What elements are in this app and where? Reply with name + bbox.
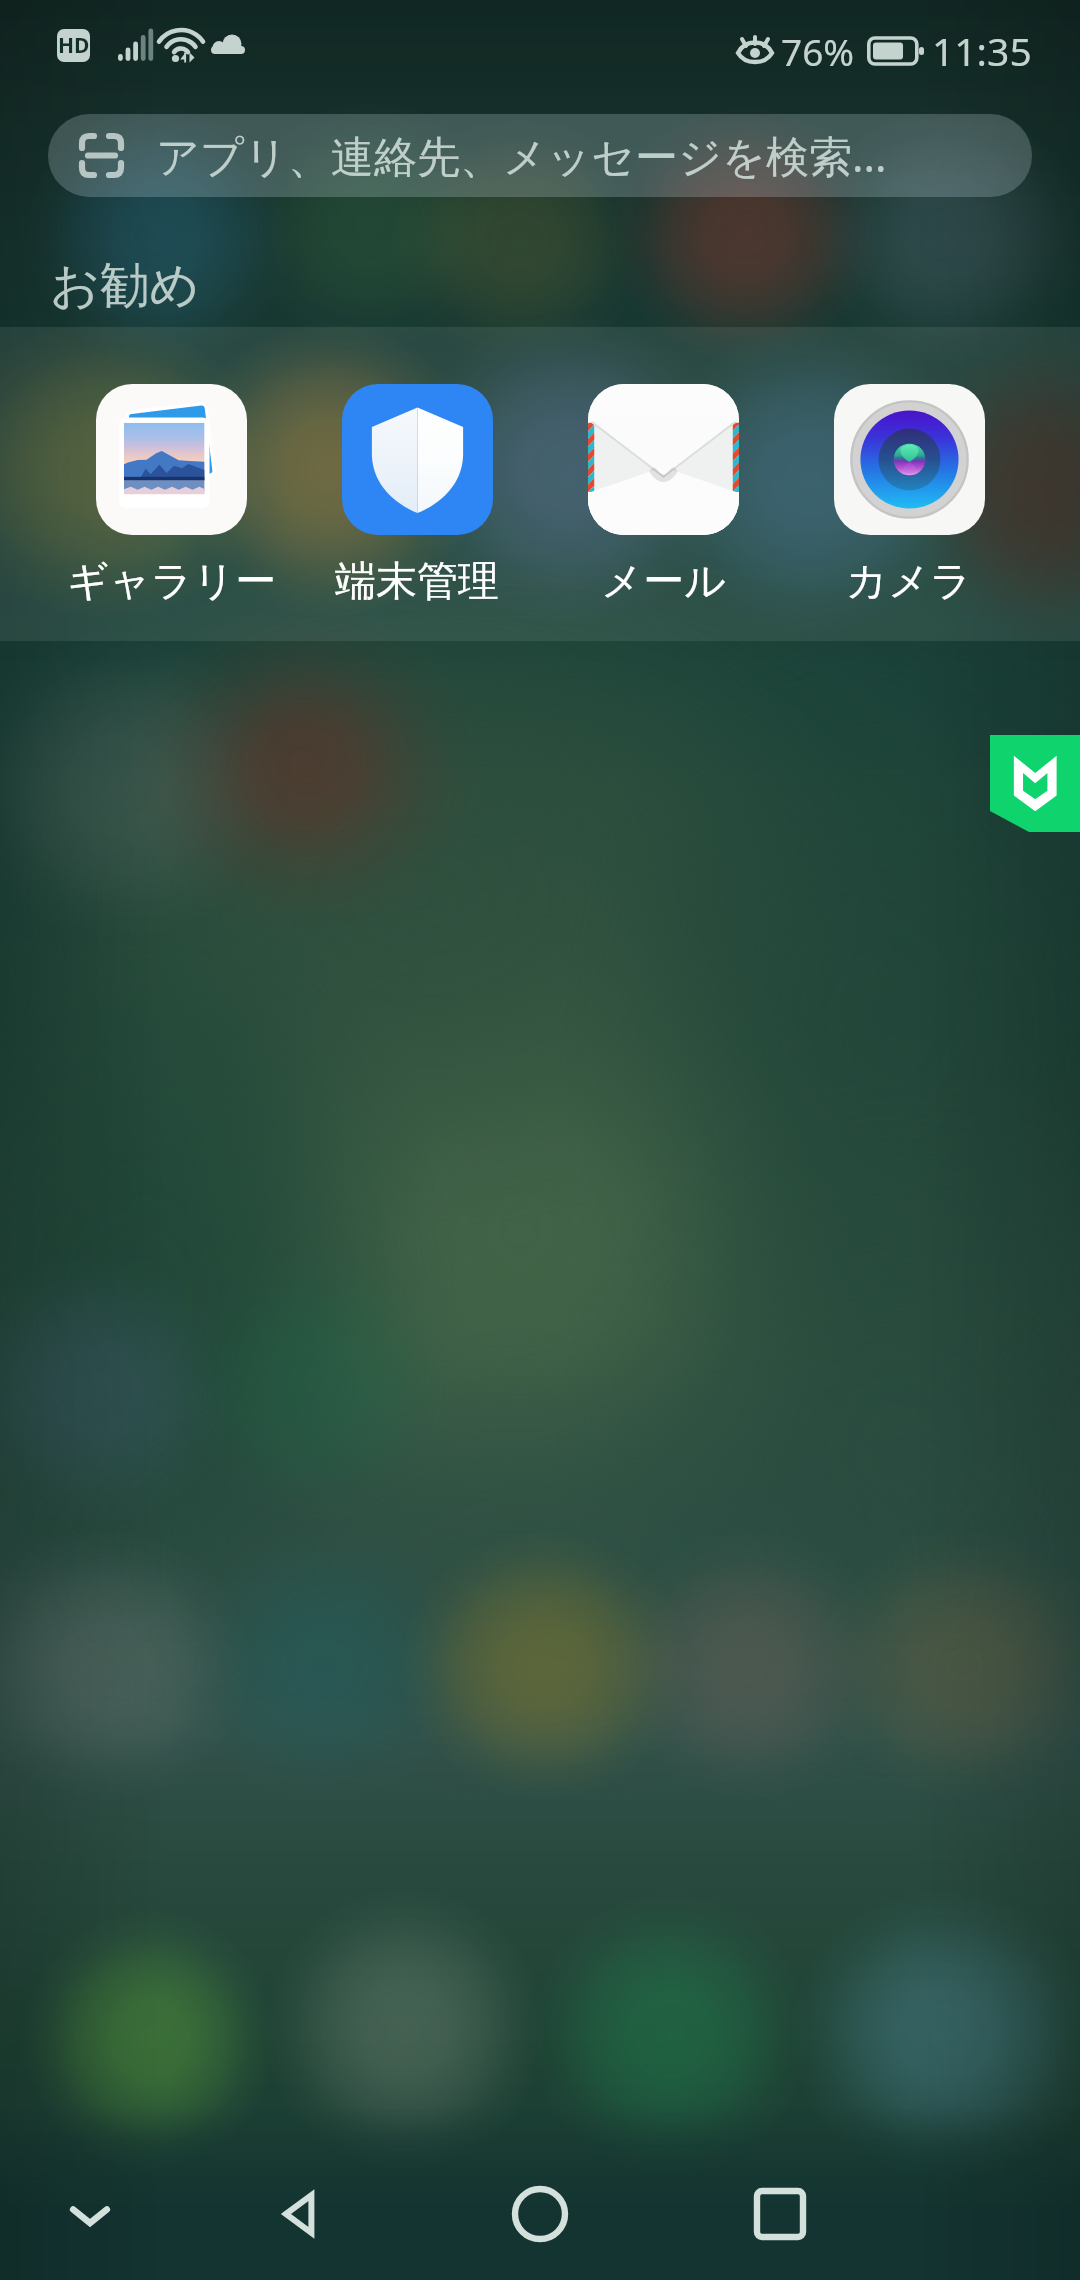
button[interactable]: カメラ xyxy=(786,327,1032,608)
staticText: カメラ xyxy=(846,556,972,608)
staticText: 76% xyxy=(781,26,855,76)
staticText: ギャラリー xyxy=(67,556,276,608)
button[interactable]: Back xyxy=(180,2148,420,2280)
button[interactable]: メール xyxy=(540,327,786,608)
staticText: 端末管理 xyxy=(335,556,499,608)
staticText: メール xyxy=(601,556,726,608)
staticText: 11:35 xyxy=(932,24,1032,77)
button[interactable]: McAfee Security xyxy=(990,735,1080,832)
button[interactable]: Recent apps xyxy=(660,2148,900,2280)
staticText: アプリ、連絡先、メッセージを検索... xyxy=(156,126,887,185)
staticText: HD xyxy=(58,31,90,60)
button[interactable]: ギャラリー xyxy=(48,327,294,608)
staticText: お勧め xyxy=(50,255,200,317)
button[interactable]: 端末管理 xyxy=(294,327,540,608)
button[interactable]: Home xyxy=(420,2148,660,2280)
button[interactable]: アプリ、連絡先、メッセージを検索... xyxy=(48,114,1032,197)
button[interactable]: Collapse xyxy=(0,2148,180,2280)
